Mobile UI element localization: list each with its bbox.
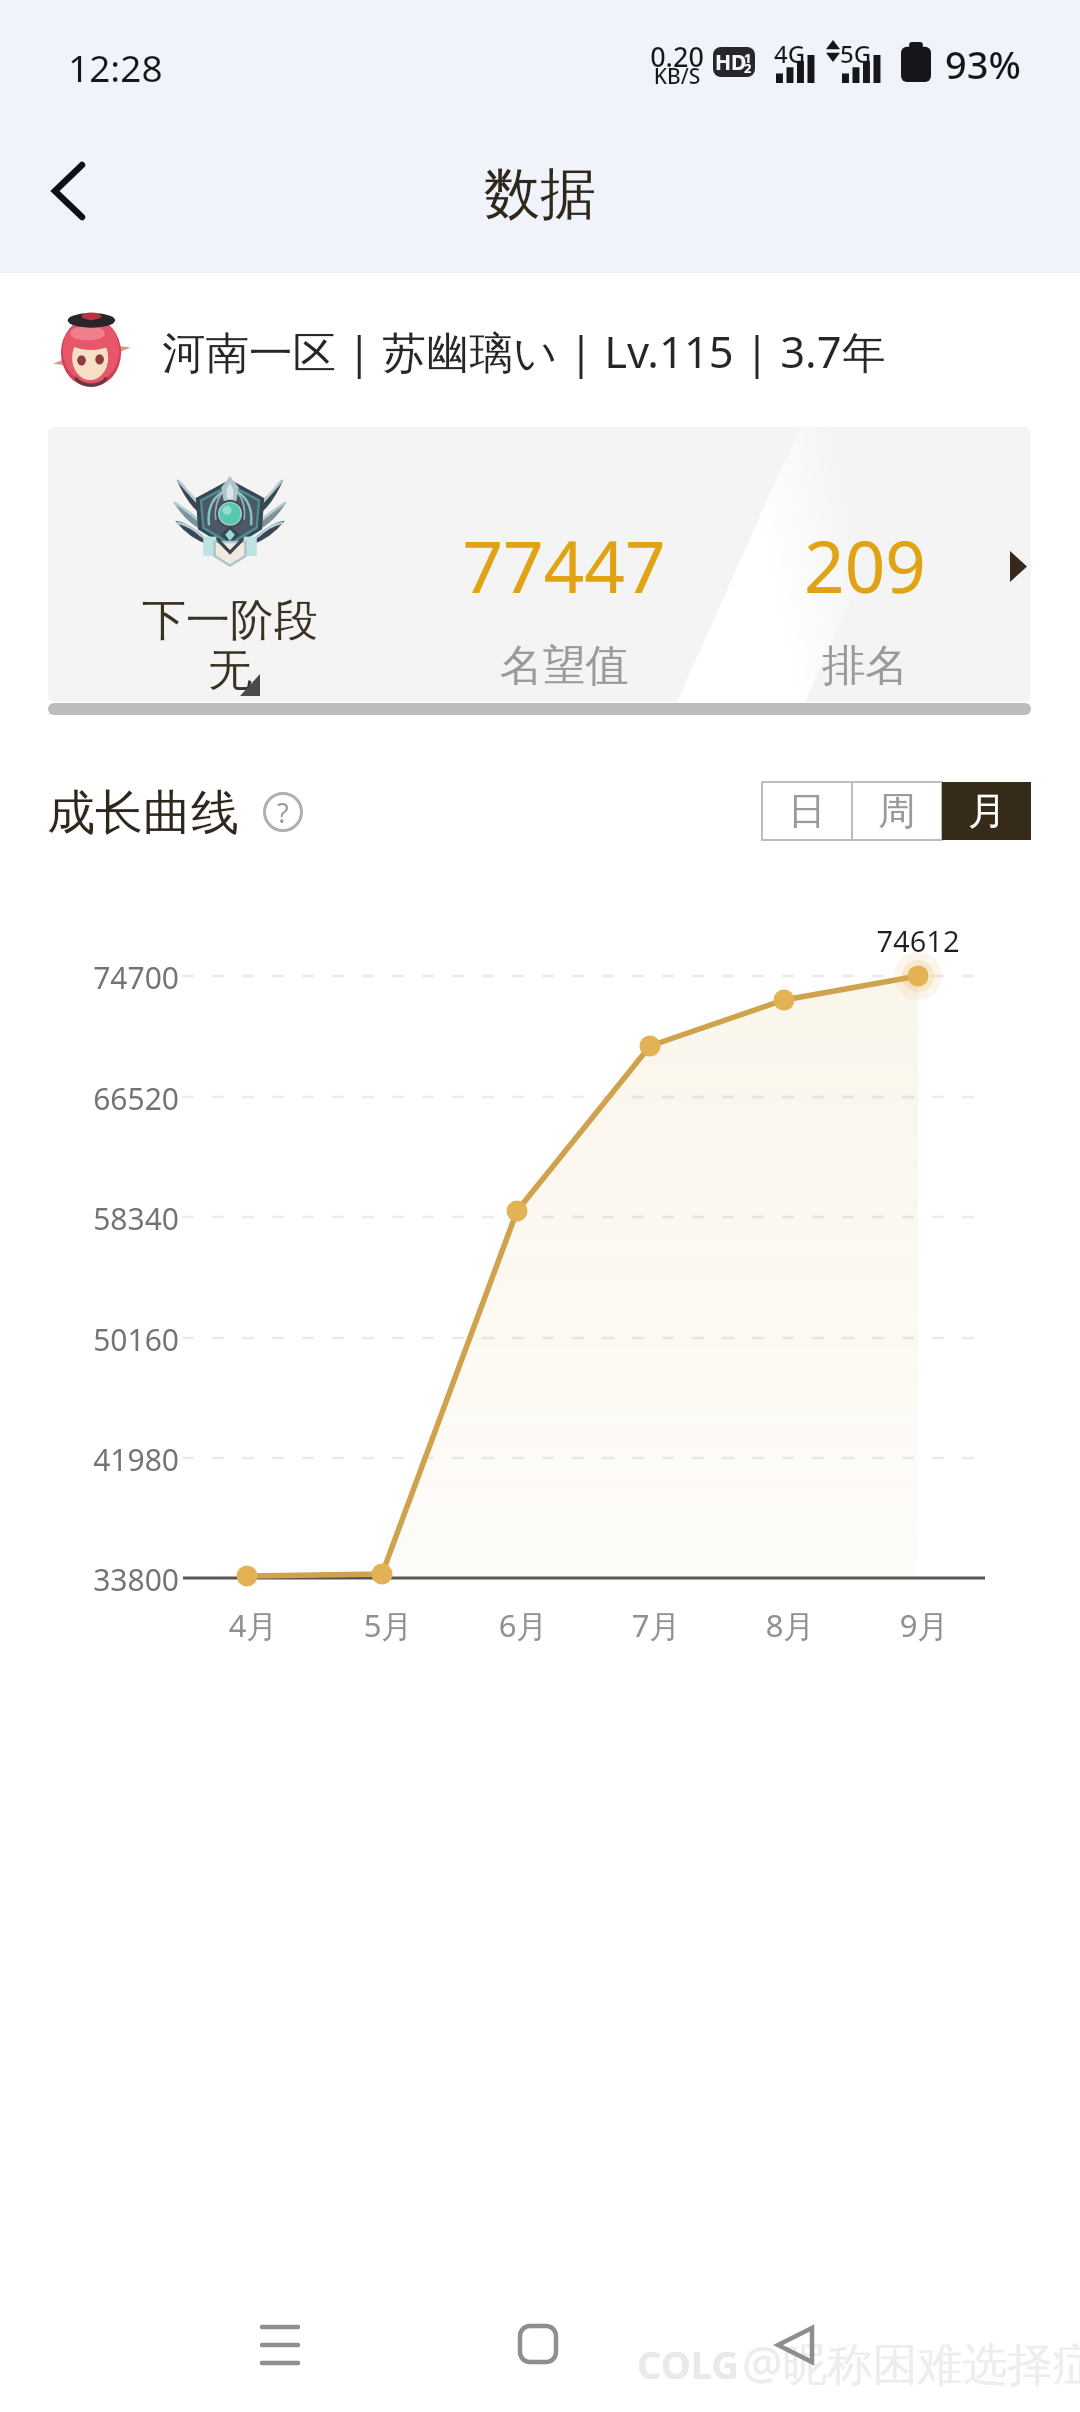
staticText: 4月 bbox=[193, 1604, 313, 1646]
staticText: 33800 bbox=[0, 1559, 179, 1600]
staticText: KB/S bbox=[648, 62, 706, 91]
button[interactable]: 下一阶段 bbox=[48, 427, 1031, 702]
button[interactable]: Back bbox=[760, 2308, 832, 2380]
button[interactable]: 月 bbox=[942, 782, 1031, 840]
staticText: 成长曲线 bbox=[47, 783, 239, 843]
staticText: 93% bbox=[945, 38, 1021, 90]
staticText: 8月 bbox=[730, 1604, 850, 1646]
staticText: 12:28 bbox=[68, 42, 163, 92]
staticText: 209 bbox=[685, 517, 1031, 614]
button[interactable]: Help bbox=[263, 792, 303, 832]
staticText: 周 bbox=[878, 787, 916, 835]
staticText: 74612 bbox=[806, 921, 1030, 960]
staticText: 河南一区 | 苏幽璃い | Lv.115 | 3.7年 bbox=[162, 321, 886, 380]
staticText: ? bbox=[277, 794, 289, 831]
staticText: 41980 bbox=[0, 1439, 179, 1480]
staticText: 74700 bbox=[0, 957, 179, 998]
button[interactable]: Recent apps bbox=[244, 2308, 316, 2380]
button[interactable]: 河南一区 | 苏幽璃い | Lv.115 | 3.7年 bbox=[0, 273, 1080, 427]
staticText: 9月 bbox=[864, 1604, 984, 1646]
staticText: 数据 bbox=[0, 159, 1080, 230]
staticText: 77447 bbox=[384, 517, 744, 614]
staticText: 6月 bbox=[463, 1604, 583, 1646]
staticText: 5G bbox=[840, 37, 872, 70]
staticText: 无 bbox=[110, 643, 350, 698]
button[interactable]: More bbox=[1010, 551, 1027, 582]
button[interactable]: Home bbox=[502, 2308, 574, 2380]
staticText: 4G bbox=[774, 37, 806, 70]
staticText: 5月 bbox=[328, 1604, 448, 1646]
staticText: 排名 bbox=[685, 639, 1031, 693]
staticText: 下一阶段 bbox=[110, 593, 350, 648]
button[interactable]: Back bbox=[24, 145, 116, 237]
staticText: 名望值 bbox=[384, 639, 744, 693]
staticText: 月 bbox=[968, 787, 1006, 835]
staticText: 2 bbox=[744, 59, 752, 77]
staticText: 66520 bbox=[0, 1078, 179, 1119]
staticText: 日 bbox=[788, 787, 826, 835]
staticText: 7月 bbox=[596, 1604, 716, 1646]
staticText: COLG bbox=[637, 2338, 739, 2390]
staticText: HD bbox=[715, 48, 747, 77]
button[interactable]: 日 bbox=[762, 782, 852, 840]
staticText: 0.20 bbox=[648, 38, 706, 75]
staticText: 50160 bbox=[0, 1319, 179, 1360]
staticText: @昵称困难选择症 bbox=[742, 2332, 1080, 2393]
staticText: 1 bbox=[744, 49, 752, 67]
staticText: 58340 bbox=[0, 1198, 179, 1239]
button[interactable]: 周 bbox=[852, 782, 942, 840]
